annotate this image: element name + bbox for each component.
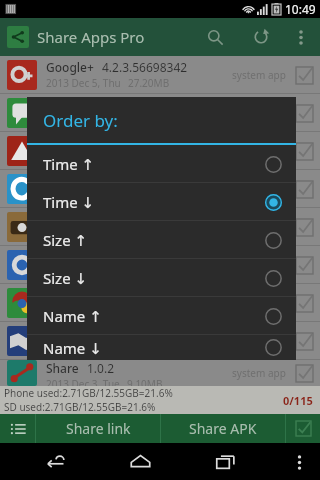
button[interactable]: Select app bbox=[292, 329, 316, 353]
staticText: 4.0.1 bbox=[88, 173, 116, 189]
button[interactable]: Time ↓ bbox=[27, 183, 296, 220]
staticText: Name ↑ bbox=[43, 306, 102, 326]
button[interactable]: Size ↓ bbox=[27, 259, 296, 296]
staticText: system app bbox=[232, 366, 286, 380]
button[interactable]: Share bbox=[0, 360, 320, 386]
staticText: SD used:2.71GB/12.55GB=21.6% bbox=[4, 400, 156, 414]
staticText: 9.10MB bbox=[127, 377, 163, 386]
button[interactable]: Recent apps bbox=[203, 443, 247, 480]
staticText: 2013 Dec 3, Tue bbox=[46, 377, 120, 386]
button[interactable]: Camera bbox=[0, 208, 320, 245]
button[interactable]: Select app bbox=[292, 253, 316, 277]
staticText: Size ↑ bbox=[43, 230, 88, 250]
button[interactable]: Menu bbox=[282, 445, 316, 479]
staticText: Order by: bbox=[43, 109, 118, 132]
staticText: 1.0.2 bbox=[87, 360, 115, 376]
staticText: Size ↓ bbox=[43, 268, 88, 288]
button[interactable]: Select app bbox=[292, 139, 316, 163]
staticText: system app bbox=[232, 296, 286, 310]
staticText: Maps bbox=[46, 325, 78, 341]
button[interactable]: Select app bbox=[292, 291, 316, 315]
button[interactable]: Refresh bbox=[242, 18, 280, 56]
staticText: Phone used:2.71GB/12.55GB=21.6% bbox=[4, 386, 173, 400]
staticText: Share Apps Pro bbox=[37, 27, 145, 47]
staticText: 2013 Dec 4, Wed bbox=[46, 266, 124, 280]
staticText: Camera bbox=[46, 211, 91, 227]
staticText: 1.1.4 bbox=[85, 135, 113, 151]
button[interactable]: Drive bbox=[0, 132, 320, 169]
staticText: 31.0 bbox=[100, 249, 124, 265]
staticText: 27.20MB bbox=[128, 76, 170, 90]
staticText: 2013 Dec 3, Tue bbox=[46, 304, 120, 318]
button[interactable]: Select app bbox=[292, 101, 316, 125]
staticText: Share APK bbox=[189, 419, 257, 438]
staticText: 7.5.0 bbox=[86, 325, 114, 341]
staticText: system app bbox=[232, 182, 286, 196]
staticText: system app bbox=[232, 68, 286, 82]
button[interactable]: Select app bbox=[292, 63, 316, 87]
staticText: Share link bbox=[66, 419, 131, 438]
button[interactable]: Select all bbox=[286, 414, 320, 443]
staticText: 2013 Dec 4, Wed bbox=[46, 228, 124, 242]
button[interactable]: Size ↑ bbox=[27, 221, 296, 258]
button[interactable]: More options bbox=[284, 20, 318, 54]
staticText: 2013 Dec 5, Thu bbox=[46, 76, 121, 90]
staticText: 0/115 bbox=[283, 393, 313, 408]
staticText: 2013 Dec 5, Thu bbox=[46, 114, 121, 128]
staticText: 10:49 bbox=[285, 1, 316, 17]
button[interactable]: Chrome Beta bbox=[0, 284, 320, 321]
staticText: 2013 Dec 4, Wed bbox=[46, 190, 124, 204]
button[interactable]: Home bbox=[118, 443, 162, 480]
staticText: 2013 Dec 3, Tue bbox=[46, 342, 120, 356]
button[interactable]: Skype bbox=[0, 170, 320, 207]
staticText: system app bbox=[232, 220, 286, 234]
button[interactable]: Chrome bbox=[0, 246, 320, 283]
staticText: Time ↑ bbox=[43, 154, 95, 174]
staticText: Drive bbox=[46, 135, 77, 151]
staticText: 2.0.0 bbox=[99, 211, 127, 227]
staticText: Google+ bbox=[46, 59, 94, 75]
button[interactable]: Name ↓ bbox=[27, 335, 296, 360]
button[interactable]: Maps bbox=[0, 322, 320, 359]
button[interactable]: Select app bbox=[292, 215, 316, 239]
staticText: Name ↓ bbox=[43, 338, 102, 358]
button[interactable]: Search bbox=[196, 18, 234, 56]
staticText: 32.0 bbox=[129, 287, 153, 303]
staticText: 2013 Dec 4, Wed bbox=[46, 152, 124, 166]
button[interactable]: Time ↑ bbox=[27, 145, 296, 182]
button[interactable]: Back bbox=[33, 443, 77, 480]
staticText: system app bbox=[232, 258, 286, 272]
staticText: Chrome Beta bbox=[46, 287, 121, 303]
button[interactable]: Google+ bbox=[0, 56, 320, 93]
button[interactable]: Select app bbox=[292, 361, 316, 385]
staticText: system app bbox=[232, 334, 286, 348]
button[interactable]: Sort options bbox=[0, 414, 35, 443]
staticText: 4.2.3.56698342 bbox=[102, 59, 188, 75]
button[interactable]: Select app bbox=[292, 177, 316, 201]
button[interactable]: Hangouts bbox=[0, 94, 320, 131]
button[interactable]: Share APK bbox=[161, 414, 285, 443]
staticText: Share bbox=[46, 360, 79, 376]
staticText: system app bbox=[232, 144, 286, 158]
staticText: Skype bbox=[46, 173, 80, 189]
staticText: Time ↓ bbox=[43, 192, 95, 212]
staticText: Chrome bbox=[46, 249, 92, 265]
button[interactable]: Name ↑ bbox=[27, 297, 296, 334]
button[interactable]: Share link bbox=[36, 414, 160, 443]
